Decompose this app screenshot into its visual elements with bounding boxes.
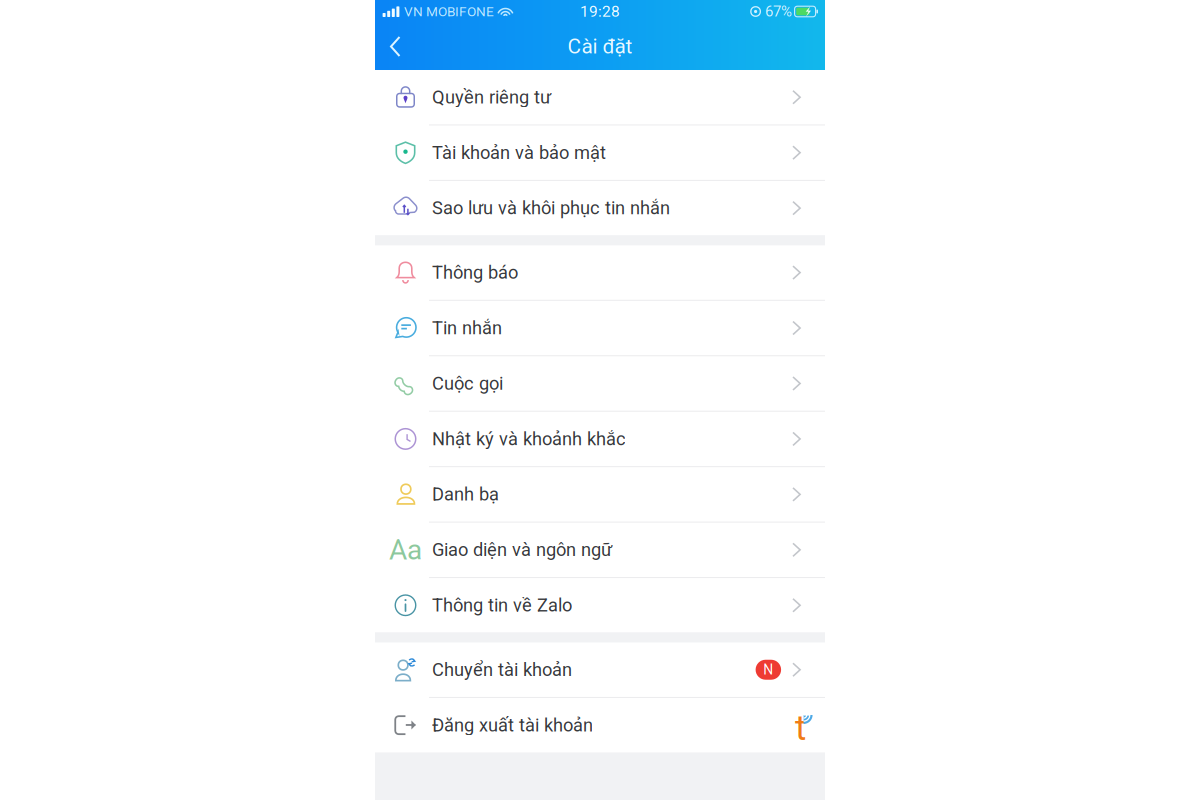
button[interactable]: Tài khoản và bảo mật (375, 125, 825, 180)
staticText: Thông tin về Zalo (432, 595, 572, 616)
staticText: Quyền riêng tư (432, 86, 551, 108)
staticText: Thông báo (432, 262, 518, 283)
button[interactable]: Quyền riêng tư (375, 70, 825, 124)
staticText: Cuộc gọi (432, 373, 503, 394)
staticText: Đăng xuất tài khoản (432, 714, 593, 736)
staticText: Giao diện và ngôn ngữ (432, 539, 612, 560)
staticText: Aa (389, 533, 422, 566)
staticText: Danh bạ (432, 484, 499, 505)
staticText: t (795, 708, 806, 748)
button[interactable]: Nhật ký và khoảnh khắc (375, 412, 825, 466)
button[interactable]: Thông tin về Zalo (375, 578, 825, 632)
button[interactable]: Chuyển tài khoản (375, 642, 825, 697)
button[interactable]: Danh bạ (375, 467, 825, 522)
button[interactable]: Back (375, 23, 420, 69)
button[interactable]: Tin nhắn (375, 301, 825, 355)
staticText: Nhật ký và khoảnh khắc (432, 428, 626, 450)
button[interactable]: Đăng xuất tài khoản (375, 698, 825, 752)
staticText: Tin nhắn (432, 317, 502, 339)
staticText: 19:28 (580, 2, 620, 20)
staticText: Cài đặt (567, 34, 632, 59)
button[interactable]: Aa (375, 523, 825, 577)
button[interactable]: Sao lưu và khôi phục tin nhắn (375, 181, 825, 235)
staticText: Tài khoản và bảo mật (432, 142, 606, 163)
staticText: 67% (761, 3, 792, 20)
button[interactable]: Cuộc gọi (375, 356, 825, 411)
staticText: Chuyển tài khoản (432, 659, 572, 680)
button[interactable]: Thông báo (375, 245, 825, 300)
staticText: N (763, 661, 773, 678)
staticText: Sao lưu và khôi phục tin nhắn (432, 197, 670, 219)
staticText: VN MOBIFONE (401, 3, 497, 19)
